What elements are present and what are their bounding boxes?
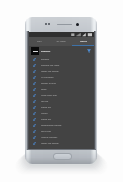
staticText: PRESETS bbox=[41, 50, 51, 53]
button[interactable]: ALL ITEMS bbox=[50, 37, 72, 46]
staticText: Figure Ink bbox=[41, 106, 51, 109]
staticText: Random bbox=[41, 58, 50, 61]
button[interactable]: Mouth bbox=[29, 110, 94, 116]
button[interactable]: Natural Luxuries bbox=[29, 134, 94, 140]
button[interactable]: Figure Ink bbox=[29, 116, 94, 122]
staticText: LOCALS bbox=[80, 40, 87, 43]
button[interactable]: All The Blues bbox=[29, 74, 94, 80]
button[interactable]: TAB 1 bbox=[29, 37, 50, 46]
button[interactable]: Random bbox=[29, 56, 94, 62]
button[interactable]: Filter bbox=[86, 48, 92, 54]
staticText: Fabre bbox=[41, 88, 47, 91]
staticText: Sending The Night bbox=[41, 64, 60, 67]
staticText: Lying From Tree bbox=[41, 94, 57, 97]
button[interactable]: Get It Way bbox=[29, 128, 94, 134]
staticText: Tower The Sonder bbox=[41, 70, 59, 73]
staticText: TAB 1 bbox=[37, 40, 42, 43]
button[interactable]: LOCALS bbox=[72, 37, 94, 46]
button[interactable]: Tower The Sonder bbox=[29, 68, 94, 74]
staticText: Get It Way bbox=[41, 130, 52, 133]
staticText: Tap Me bbox=[41, 100, 49, 103]
button[interactable]: Generational Setting bbox=[29, 122, 94, 128]
staticText: Keepin' In Mud bbox=[41, 82, 56, 85]
button[interactable]: Lying From Tree bbox=[29, 92, 94, 98]
staticText: All The Blues bbox=[41, 76, 54, 79]
button[interactable]: Figure Ink bbox=[29, 104, 94, 110]
staticText: Generational Setting bbox=[41, 124, 62, 127]
staticText: Mouth bbox=[41, 112, 48, 115]
button[interactable]: Fabre bbox=[29, 86, 94, 92]
button[interactable]: Sending The Night bbox=[29, 62, 94, 68]
staticText: ALL ITEMS bbox=[56, 40, 66, 43]
button[interactable]: Keepin' In Mud bbox=[29, 80, 94, 86]
button[interactable]: Tap Me bbox=[29, 98, 94, 104]
staticText: Tower The Sonder bbox=[41, 142, 59, 145]
button[interactable]: Tower The Sonder bbox=[29, 140, 94, 146]
staticText: Natural Luxuries bbox=[41, 136, 58, 139]
staticText: Figure Ink bbox=[41, 118, 51, 121]
